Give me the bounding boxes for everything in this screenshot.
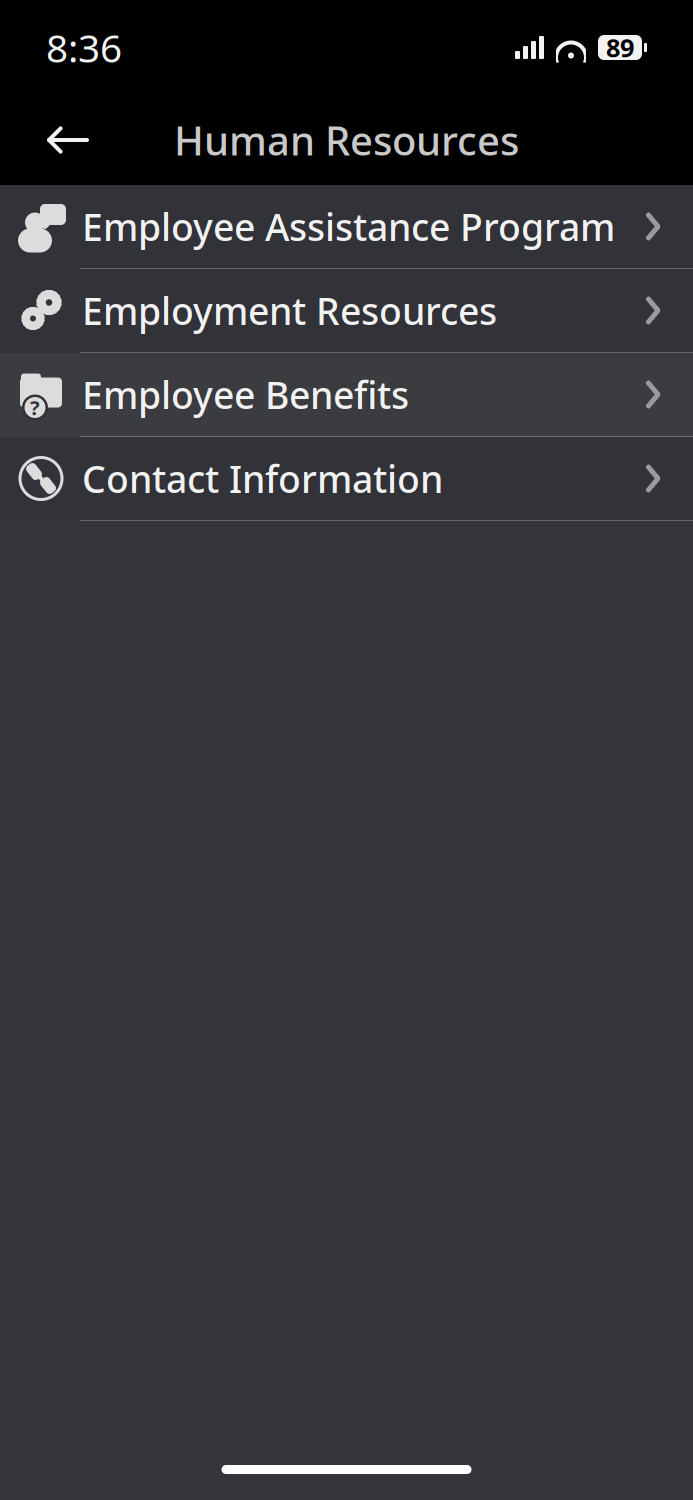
button[interactable]: Back — [28, 104, 108, 176]
staticText: Employee Assistance Program — [82, 202, 615, 251]
staticText: Employee Benefits — [82, 370, 409, 419]
button[interactable]: Employment Resources — [0, 269, 693, 353]
button[interactable]: Contact Information — [0, 437, 693, 521]
staticText: Employment Resources — [82, 286, 497, 335]
button[interactable]: ? — [0, 353, 693, 437]
staticText: 89 — [606, 31, 634, 64]
staticText: Human Resources — [174, 113, 519, 166]
staticText: Contact Information — [82, 454, 443, 503]
button[interactable]: Employee Assistance Program — [0, 185, 693, 269]
staticText: ? — [30, 394, 40, 421]
staticText: 8:36 — [46, 22, 122, 73]
